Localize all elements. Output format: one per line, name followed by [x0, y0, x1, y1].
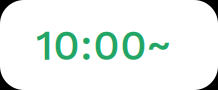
- staticText: 10:00~: [36, 20, 171, 70]
